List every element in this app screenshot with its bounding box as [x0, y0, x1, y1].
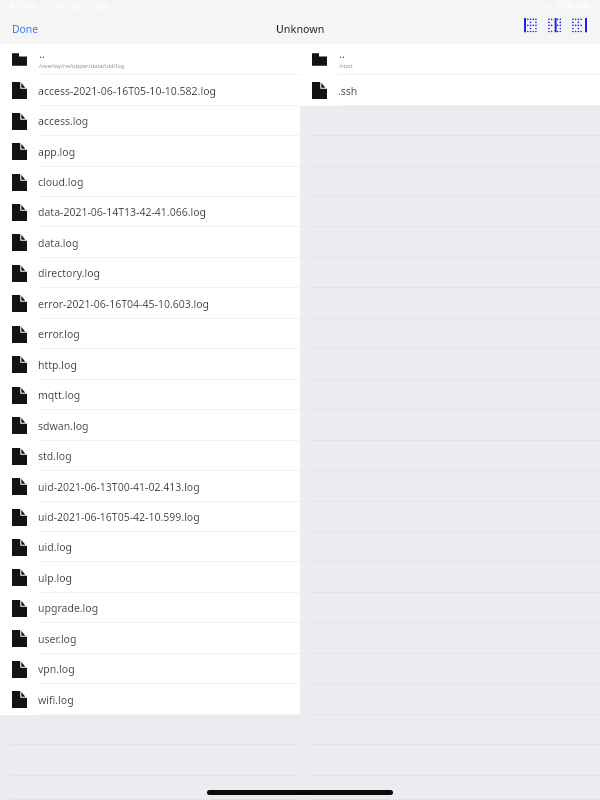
staticText: user.log — [38, 632, 77, 646]
staticText: /root — [339, 62, 353, 70]
staticText: /overlay/rw/upper/data/uid/log — [39, 62, 125, 70]
staticText: app.log — [38, 145, 76, 159]
button[interactable]: app.log — [0, 136, 300, 167]
staticText: std.log — [38, 449, 72, 463]
button[interactable]: upgrade.log — [0, 593, 300, 623]
button[interactable]: .. — [0, 44, 300, 75]
staticText: error-2021-06-16T04-45-10.603.log — [38, 297, 210, 311]
staticText: wifi.log — [38, 693, 74, 707]
button[interactable]: Show both panes — [548, 18, 563, 33]
button[interactable]: directory.log — [0, 258, 300, 288]
staticText: .. — [339, 46, 345, 61]
button[interactable]: cloud.log — [0, 167, 300, 197]
staticText: http.log — [38, 358, 77, 372]
button[interactable]: uid.log — [0, 532, 300, 562]
staticText: Unknown — [276, 22, 325, 36]
staticText: .ssh — [338, 84, 358, 98]
button[interactable]: Done — [0, 14, 51, 44]
button[interactable]: error.log — [0, 319, 300, 349]
button[interactable]: vpn.log — [0, 654, 300, 684]
button[interactable]: wifi.log — [0, 684, 300, 715]
button[interactable]: uid-2021-06-16T05-42-10.599.log — [0, 502, 300, 532]
staticText: cloud.log — [38, 175, 84, 189]
staticText: vpn.log — [38, 662, 75, 676]
staticText: data.log — [38, 236, 79, 250]
staticText: mqtt.log — [38, 388, 81, 402]
staticText: upgrade.log — [38, 601, 99, 615]
staticText: ulp.log — [38, 571, 72, 585]
staticText: sdwan.log — [38, 419, 89, 433]
staticText: Done — [12, 22, 39, 36]
staticText: .. — [39, 46, 45, 61]
button[interactable]: Show left pane only — [524, 18, 539, 33]
staticText: directory.log — [38, 266, 101, 280]
button[interactable]: access.log — [0, 106, 300, 136]
button[interactable]: sdwan.log — [0, 410, 300, 441]
button[interactable]: data.log — [0, 227, 300, 258]
staticText: uid-2021-06-13T00-41-02.413.log — [38, 480, 200, 494]
staticText: access.log — [38, 114, 89, 128]
staticText: uid.log — [38, 540, 72, 554]
button[interactable]: Show right pane only — [572, 18, 587, 33]
button[interactable]: uid-2021-06-13T00-41-02.413.log — [0, 471, 300, 502]
button[interactable]: access-2021-06-16T05-10-10.582.log — [0, 75, 300, 106]
button[interactable]: .. — [300, 44, 600, 75]
staticText: uid-2021-06-16T05-42-10.599.log — [38, 510, 200, 524]
button[interactable]: ulp.log — [0, 562, 300, 593]
staticText: access-2021-06-16T05-10-10.582.log — [38, 84, 216, 98]
button[interactable]: mqtt.log — [0, 380, 300, 410]
button[interactable]: std.log — [0, 441, 300, 471]
button[interactable]: http.log — [0, 349, 300, 380]
staticText: error.log — [38, 327, 80, 341]
button[interactable]: data-2021-06-14T13-42-41.066.log — [0, 197, 300, 227]
staticText: data-2021-06-14T13-42-41.066.log — [38, 205, 207, 219]
button[interactable]: error-2021-06-16T04-45-10.603.log — [0, 288, 300, 319]
button[interactable]: user.log — [0, 623, 300, 654]
button[interactable]: .ssh — [300, 75, 600, 106]
